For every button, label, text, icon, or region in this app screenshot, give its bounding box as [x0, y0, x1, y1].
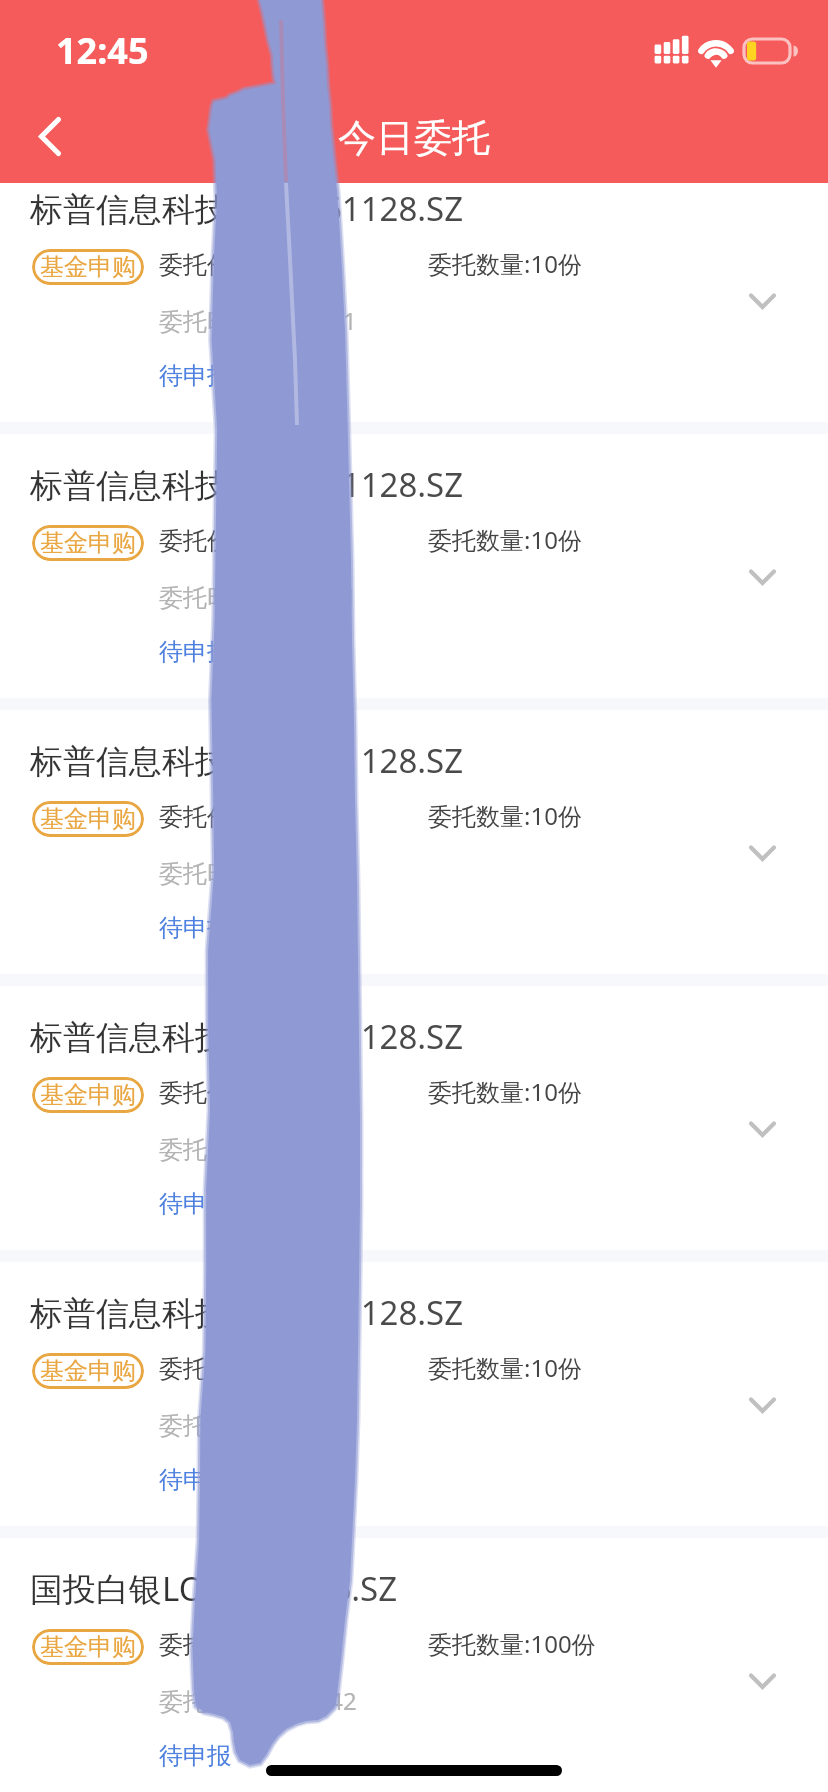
- staticText: 基金申购: [40, 1632, 136, 1662]
- staticText: 161128.SZ: [304, 186, 464, 231]
- staticText: 161128.SZ: [304, 1290, 464, 1335]
- staticText: 委托价:1.000: [159, 523, 299, 556]
- staticText: 委托价:1.000: [159, 799, 299, 832]
- button[interactable]: Back: [10, 96, 90, 176]
- staticText: 委托价:1.000: [159, 1351, 299, 1384]
- staticText: 委托价:1.000: [159, 247, 299, 280]
- button[interactable]: Expand: [732, 1651, 792, 1711]
- staticText: 委托时间:09:30:42: [159, 1684, 357, 1717]
- staticText: 基金申购: [40, 1356, 136, 1386]
- staticText: 待申报: [159, 1741, 231, 1771]
- staticText: 基金申购: [40, 1080, 136, 1110]
- staticText: 委托数量:100份: [428, 1627, 596, 1660]
- button[interactable]: Expand: [732, 547, 792, 607]
- button[interactable]: 基金申购: [32, 1353, 144, 1389]
- button[interactable]: 基金申购: [32, 525, 144, 561]
- staticText: 委托数量:10份: [428, 799, 582, 832]
- staticText: 委托数量:10份: [428, 247, 582, 280]
- staticText: 标普信息科技LOF: [30, 1290, 288, 1335]
- staticText: 今日委托: [0, 114, 828, 162]
- button[interactable]: 基金申购: [32, 249, 144, 285]
- button[interactable]: 标普信息科技LOF: [0, 986, 828, 1250]
- staticText: 委托价:1.000: [159, 1075, 299, 1108]
- staticText: 标普信息科技LOF: [30, 186, 288, 231]
- staticText: 12:45: [56, 26, 149, 75]
- button[interactable]: Expand: [732, 271, 792, 331]
- button[interactable]: 标普信息科技LOF: [0, 434, 828, 698]
- staticText: 基金申购: [40, 528, 136, 558]
- staticText: 标普信息科技LOF: [30, 1014, 288, 1059]
- button[interactable]: 标普信息科技LOF: [0, 183, 828, 422]
- button[interactable]: 标普信息科技LOF: [0, 1262, 828, 1526]
- staticText: 标普信息科技LOF: [30, 738, 288, 783]
- staticText: 待申报: [159, 361, 231, 391]
- staticText: 待申报: [159, 1189, 231, 1219]
- staticText: 委托时间:09:31:21: [159, 580, 357, 613]
- button[interactable]: Expand: [732, 1375, 792, 1435]
- button[interactable]: Expand: [732, 823, 792, 883]
- staticText: 委托数量:10份: [428, 1351, 582, 1384]
- staticText: 161128.SZ: [304, 462, 464, 507]
- button[interactable]: Expand: [732, 1099, 792, 1159]
- staticText: 委托时间:09:31:21: [159, 304, 357, 337]
- staticText: 基金申购: [40, 252, 136, 282]
- button[interactable]: 国投白银LOF: [0, 1538, 828, 1792]
- staticText: 委托时间:09:31:21: [159, 1408, 357, 1441]
- button[interactable]: 基金申购: [32, 1629, 144, 1665]
- staticText: 基金申购: [40, 804, 136, 834]
- button[interactable]: 基金申购: [32, 801, 144, 837]
- staticText: 委托数量:10份: [428, 1075, 582, 1108]
- staticText: 委托数量:10份: [428, 523, 582, 556]
- staticText: 标普信息科技LOF: [30, 462, 288, 507]
- staticText: 待申报: [159, 637, 231, 667]
- staticText: 161226.SZ: [238, 1566, 398, 1611]
- staticText: 委托时间:09:31:21: [159, 856, 357, 889]
- staticText: 161128.SZ: [304, 738, 464, 783]
- staticText: 待申报: [159, 913, 231, 943]
- staticText: 161128.SZ: [304, 1014, 464, 1059]
- button[interactable]: 基金申购: [32, 1077, 144, 1113]
- button[interactable]: 标普信息科技LOF: [0, 710, 828, 974]
- staticText: 待申报: [159, 1465, 231, 1495]
- staticText: 委托价:1.000: [159, 1627, 299, 1660]
- staticText: 国投白银LOF: [30, 1566, 222, 1611]
- staticText: 委托时间:09:31:21: [159, 1132, 357, 1165]
